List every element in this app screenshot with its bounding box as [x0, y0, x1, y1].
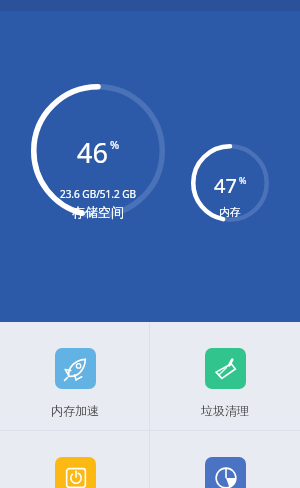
button[interactable]: Power saving — [0, 431, 150, 488]
button[interactable]: 垃圾清理 — [150, 322, 300, 431]
staticText: 47 — [214, 172, 237, 199]
button[interactable]: Storage analysis — [150, 431, 300, 488]
staticText: 垃圾清理 — [201, 403, 249, 418]
button[interactable]: 内存加速 — [0, 322, 150, 431]
staticText: 46 — [77, 134, 108, 171]
staticText: % — [110, 137, 120, 152]
staticText: 存储空间 — [31, 204, 165, 220]
staticText: 23.6 GB/51.2 GB — [31, 187, 165, 201]
staticText: 内存 — [191, 205, 269, 219]
staticText: % — [239, 174, 247, 186]
staticText: 内存加速 — [51, 403, 99, 418]
